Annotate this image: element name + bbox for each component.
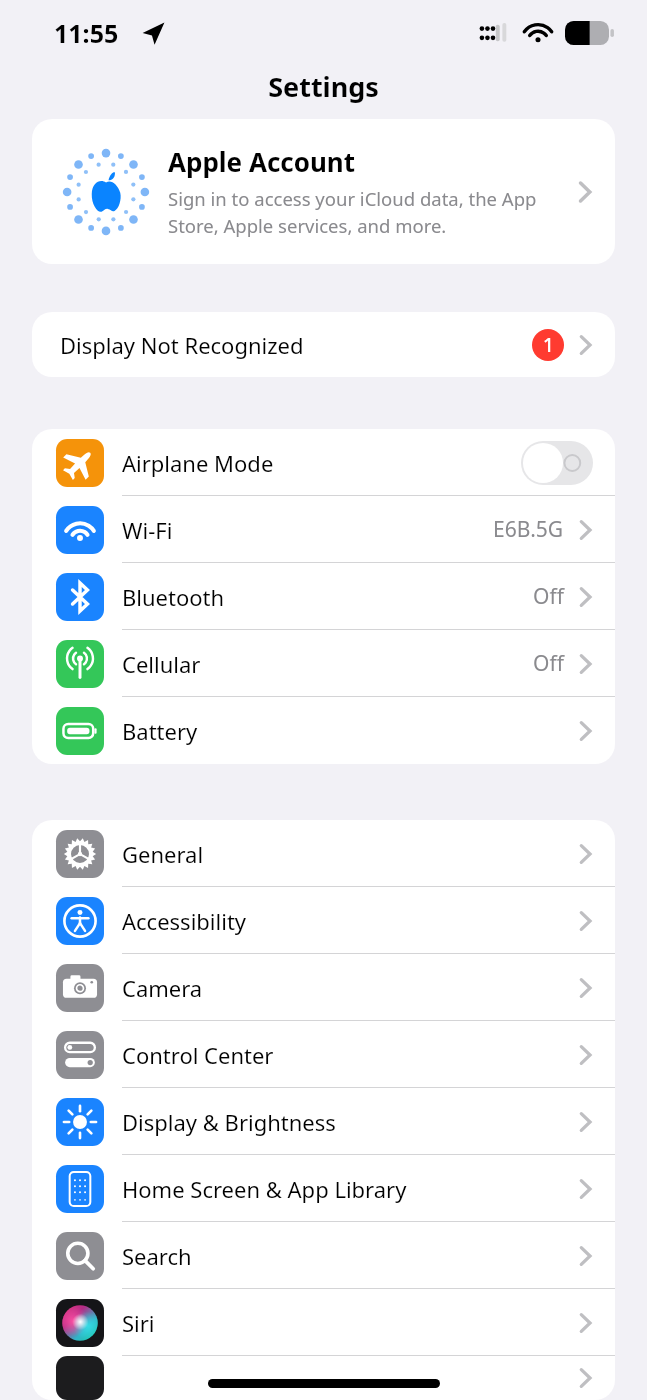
button[interactable]: Airplane Mode toggle — [521, 441, 593, 485]
button[interactable]: Display & Brightness — [32, 1088, 615, 1155]
button[interactable]: Search — [32, 1222, 615, 1289]
button[interactable]: Cellular — [32, 630, 615, 697]
staticText: Display & Brightness — [122, 1107, 578, 1137]
button[interactable]: Accessibility — [32, 887, 615, 954]
staticText: Off — [533, 582, 564, 611]
staticText: Apple Account — [168, 144, 356, 179]
button[interactable]: Battery — [32, 697, 615, 764]
staticText: Siri — [122, 1308, 578, 1338]
staticText: E6B.5G — [493, 515, 564, 544]
button[interactable]: General — [32, 820, 615, 887]
staticText: Search — [122, 1241, 578, 1271]
staticText: Camera — [122, 973, 578, 1003]
button[interactable]: Home Screen & App Library — [32, 1155, 615, 1222]
button[interactable]: Camera — [32, 954, 615, 1021]
button[interactable]: Control Center — [32, 1021, 615, 1088]
button[interactable]: Wi-Fi — [32, 496, 615, 563]
staticText: Off — [533, 649, 564, 678]
staticText: Sign in to access your iCloud data, the … — [168, 186, 567, 239]
staticText: Control Center — [122, 1040, 578, 1070]
staticText: Settings — [268, 68, 379, 105]
staticText: 1 — [543, 332, 554, 358]
staticText: Cellular — [122, 649, 533, 679]
staticText — [122, 1363, 578, 1393]
staticText: Display Not Recognized — [60, 330, 532, 360]
button[interactable]: Siri — [32, 1289, 615, 1356]
staticText: Home Screen & App Library — [122, 1174, 578, 1204]
button[interactable]: Display Not Recognized — [32, 312, 615, 377]
staticText: Accessibility — [122, 906, 578, 936]
staticText: 11:55 — [54, 16, 119, 50]
staticText: Bluetooth — [122, 582, 533, 612]
staticText: Airplane Mode — [122, 448, 521, 478]
staticText: General — [122, 839, 578, 869]
button[interactable]: Bluetooth — [32, 563, 615, 630]
button[interactable] — [32, 1356, 615, 1400]
staticText: Wi-Fi — [122, 515, 493, 545]
staticText: Battery — [122, 716, 578, 746]
button[interactable]: Apple Account — [32, 119, 615, 264]
